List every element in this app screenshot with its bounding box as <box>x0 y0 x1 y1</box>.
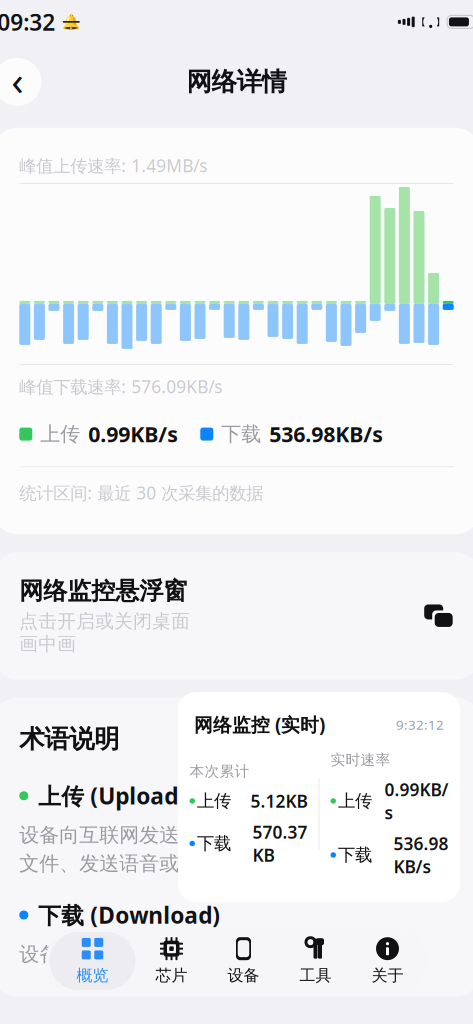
button[interactable]: 返回 <box>0 58 41 106</box>
staticText: 上传 <box>40 422 80 446</box>
staticText: 570.37KB <box>252 820 307 866</box>
staticText: 统计区间: 最近 30 次采集的数据 <box>19 481 263 504</box>
staticText: 下载 (Download) <box>38 900 220 930</box>
staticText: 概览 <box>76 966 108 985</box>
staticText: 本次累计 <box>189 762 249 780</box>
staticText: 0.99KB/s <box>384 778 448 824</box>
staticText: 设备从互联网接收数据的速率。 <box>19 942 299 967</box>
staticText: 🔔 <box>62 13 80 30</box>
staticText: 设备 <box>227 966 259 985</box>
staticText: 实时速率 <box>330 751 390 769</box>
staticText: 峰值上传速率: 1.49MB/s <box>19 154 207 177</box>
staticText: 网络监控 (实时) <box>194 712 325 737</box>
staticText: 5.12KB <box>250 789 307 812</box>
staticText: 网络详情 <box>186 66 286 97</box>
staticText: 关于 <box>371 966 403 985</box>
button[interactable]: 工具 <box>279 932 351 990</box>
button[interactable]: 概览 <box>49 932 135 990</box>
button[interactable]: 芯片 <box>135 932 207 990</box>
staticText: 上传 (Upload) <box>38 781 186 811</box>
staticText: ‹ <box>11 53 23 106</box>
staticText: 文件、发送语音或视频通话的上行流量。 <box>19 851 379 876</box>
staticText: 网络监控悬浮窗 <box>19 576 187 606</box>
staticText: 下载 <box>221 422 261 446</box>
staticText: 下载 <box>338 844 372 866</box>
staticText: 536.98KB/s <box>393 832 448 878</box>
staticText: 术语说明 <box>19 724 119 755</box>
staticText: 芯片 <box>155 966 187 985</box>
staticText: 0.99KB/s <box>88 420 178 448</box>
staticText: 峰值下载速率: 576.09KB/s <box>19 375 222 398</box>
button[interactable]: 设备 <box>207 932 279 990</box>
button[interactable]: 网络监控悬浮窗 <box>0 552 473 680</box>
staticText: 上传 <box>197 790 231 812</box>
staticText: 536.98KB/s <box>269 420 383 448</box>
staticText: 上传 <box>338 790 372 812</box>
staticText: 下载 <box>197 833 231 854</box>
staticText: 工具 <box>299 966 331 985</box>
staticText: 设备向互联网发送数据的速率，例如上传 <box>19 823 379 847</box>
staticText: 点击开启或关闭桌面画中画 <box>19 610 190 656</box>
button[interactable]: 关于 <box>351 932 423 990</box>
staticText: 9:32:12 <box>396 716 444 733</box>
staticText: 09:32 <box>0 7 55 37</box>
